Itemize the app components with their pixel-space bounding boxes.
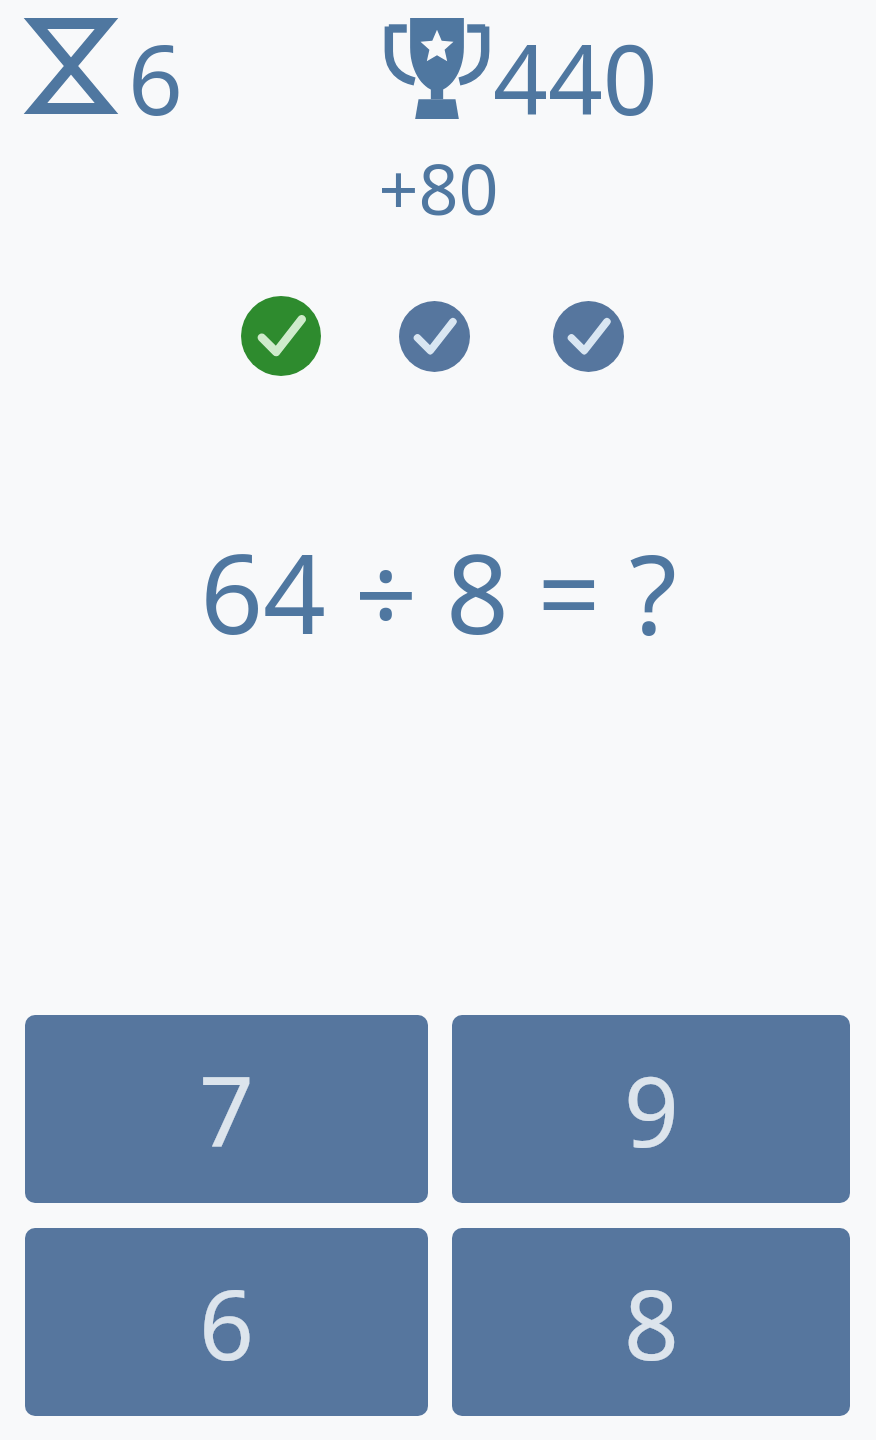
button[interactable]: Timer remaining (30, 18, 112, 114)
staticText: 7 (199, 1044, 254, 1175)
button[interactable]: Question 3 correct (553, 301, 624, 372)
button[interactable]: Score trophy (381, 16, 493, 120)
staticText: 9 (624, 1044, 679, 1175)
staticText: 6 (128, 12, 183, 143)
button[interactable]: Question 2 correct (399, 301, 470, 372)
button[interactable]: 6 (25, 1228, 428, 1416)
staticText: +80 (378, 140, 499, 235)
button[interactable]: 8 (452, 1228, 850, 1416)
button[interactable]: Question 1 correct (241, 296, 321, 376)
staticText: 8 (624, 1257, 679, 1388)
button[interactable]: 9 (452, 1015, 850, 1203)
staticText: 6 (199, 1257, 254, 1388)
button[interactable]: 7 (25, 1015, 428, 1203)
staticText: 440 (493, 12, 658, 143)
staticText: 64 ÷ 8 = ? (200, 516, 677, 666)
